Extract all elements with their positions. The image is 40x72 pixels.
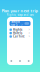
staticText: Car hire bbox=[13, 35, 25, 38]
staticText: Flights bbox=[13, 28, 22, 31]
staticText: > bbox=[28, 35, 30, 38]
button[interactable]: Car hire bbox=[7, 35, 33, 38]
staticText: > bbox=[28, 31, 30, 35]
button[interactable]: Home bbox=[7, 59, 16, 62]
staticText: Mar 4 - 7 bbox=[11, 23, 23, 27]
button[interactable]: Search bbox=[16, 59, 24, 62]
button[interactable]: Flights bbox=[7, 28, 33, 31]
staticText: Hotels bbox=[13, 31, 22, 35]
staticText: > bbox=[28, 28, 30, 31]
button[interactable]: Hotels bbox=[7, 31, 33, 35]
staticText: Tokyo bbox=[11, 20, 20, 23]
button[interactable]: Profile bbox=[24, 59, 33, 62]
staticText: Plan your next trip bbox=[1, 8, 38, 13]
staticText: Flights, stays and cars bbox=[6, 13, 33, 17]
